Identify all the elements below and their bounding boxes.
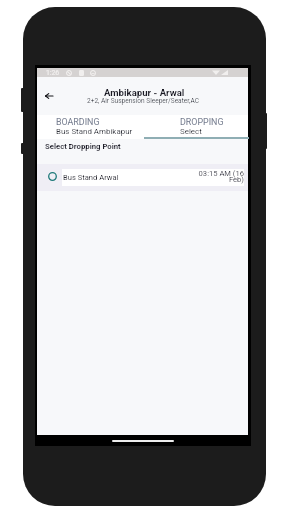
staticText: Ambikapur - Arwal [104, 87, 185, 98]
staticText: Select [180, 127, 202, 136]
staticText: Select Dropping Point [45, 142, 121, 151]
staticText: 03:15 AM (16 [196, 169, 244, 178]
staticText: Bus Stand Ambikapur [56, 127, 133, 136]
button[interactable]: DROPPING [144, 113, 249, 139]
button[interactable]: Back [39, 86, 58, 105]
button[interactable]: BOARDING [37, 113, 143, 139]
button[interactable]: Bus Stand Arwal [37, 164, 248, 191]
staticText: 1:26 [46, 69, 60, 77]
staticText: 2+2, Air Suspension Sleeper/Seater,AC [87, 97, 199, 105]
staticText: BOARDING [56, 117, 100, 127]
staticText: DROPPING [180, 117, 224, 127]
staticText: Feb) [196, 175, 244, 184]
staticText: Bus Stand Arwal [63, 173, 119, 182]
